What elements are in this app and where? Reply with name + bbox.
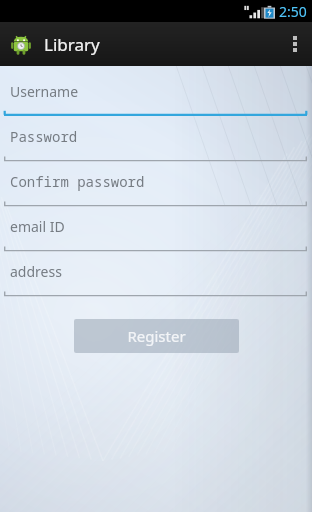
staticText: address [10,262,62,281]
staticText: Confirm password [10,172,145,191]
staticText: Password [10,127,78,146]
staticText: 2:50 [279,2,307,21]
button[interactable]: address [4,252,307,297]
button[interactable]: Confirm password [4,162,307,207]
staticText: email ID [10,217,65,236]
button[interactable]: Username [4,72,307,117]
button[interactable]: Register [74,319,239,353]
button[interactable]: Password [4,117,307,162]
staticText: Register [127,326,186,346]
button[interactable]: More options [278,22,312,66]
staticText: Username [10,82,79,101]
staticText: Library [44,33,100,56]
button[interactable]: email ID [4,207,307,252]
